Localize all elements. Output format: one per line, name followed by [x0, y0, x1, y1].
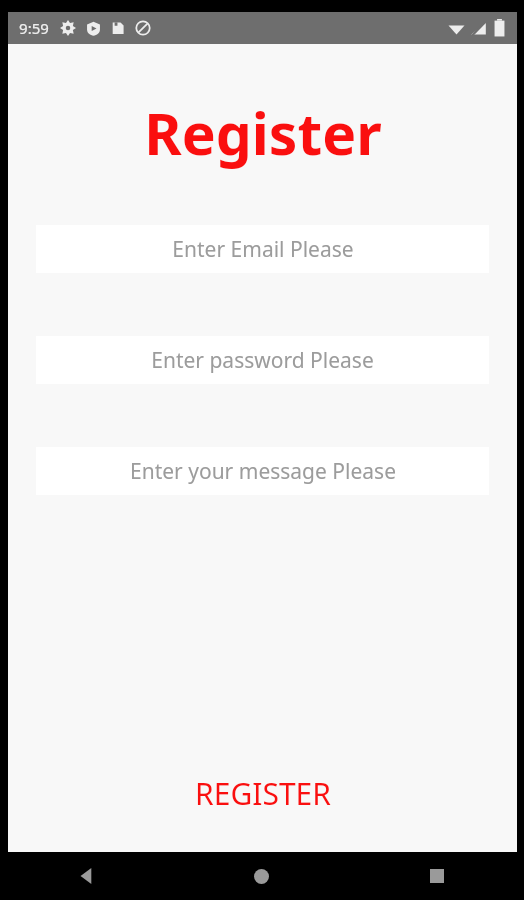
button[interactable]: REGISTER [8, 765, 517, 822]
button[interactable]: Recent apps [349, 852, 524, 900]
staticText: Enter Email Please [172, 235, 354, 264]
button[interactable]: Enter your message Please [36, 447, 489, 495]
button[interactable]: Home [174, 852, 349, 900]
staticText: 9:59 [19, 18, 49, 38]
button[interactable]: Enter password Please [36, 336, 489, 384]
staticText: Enter password Please [151, 346, 374, 375]
button[interactable]: Back [0, 852, 174, 900]
staticText: Register [144, 94, 382, 172]
staticText: Enter your message Please [130, 457, 396, 486]
button[interactable]: Enter Email Please [36, 225, 489, 273]
staticText: REGISTER [195, 773, 331, 814]
